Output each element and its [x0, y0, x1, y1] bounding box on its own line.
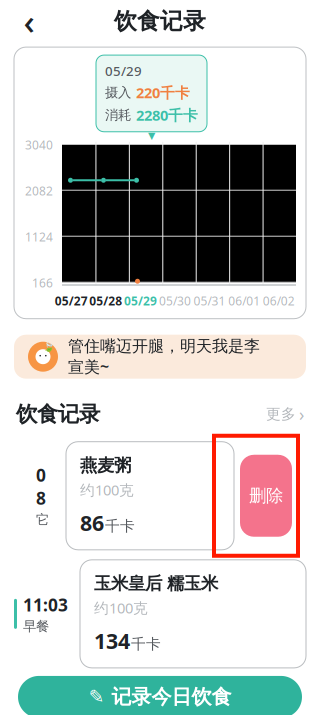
staticText: 删除 [249, 485, 283, 506]
staticText: 早餐 [23, 618, 49, 635]
staticText: 06/01 [228, 293, 260, 309]
staticText: 千卡 [105, 517, 135, 535]
staticText: 玉米皇后 糯玉米 [94, 573, 218, 594]
staticText: 3040 [25, 137, 53, 153]
staticText: 05/27 [55, 293, 88, 309]
button[interactable]: 更多 [256, 397, 304, 432]
staticText: 11:03 [23, 593, 68, 616]
staticText: 06/02 [263, 293, 295, 309]
staticText: 05/31 [194, 293, 226, 309]
staticText: 管住嘴迈开腿，明天我是李宣美~ [68, 336, 260, 377]
staticText: › [299, 403, 304, 426]
staticText: 约100克 [80, 480, 134, 499]
staticText: 饮食记录 [16, 401, 100, 427]
staticText: ‹ [23, 0, 34, 44]
staticText: 08 [36, 464, 46, 510]
staticText: 记录今日饮食 [111, 685, 231, 709]
staticText: 05/30 [159, 293, 191, 309]
staticText: 220千卡 [136, 83, 190, 102]
staticText: ✎ [88, 686, 104, 707]
staticText: 消耗 [105, 107, 131, 123]
staticText: 千卡 [131, 635, 161, 653]
staticText: 86 [80, 508, 104, 537]
staticText: 05/29 [105, 62, 142, 80]
staticText: 摄入 [105, 84, 131, 101]
staticText: 约100克 [94, 598, 148, 618]
staticText: 🍃 [43, 342, 55, 352]
staticText: 05/28 [89, 293, 122, 309]
staticText: 燕麦粥 [80, 455, 131, 476]
staticText: 05/29 [124, 293, 157, 309]
staticText: 134 [94, 627, 130, 655]
staticText: 2082 [25, 183, 53, 199]
staticText: 饮食记录 [114, 7, 206, 35]
staticText: 2280千卡 [136, 105, 198, 125]
button[interactable]: 返回 [8, 1, 50, 41]
staticText: ▾ [148, 127, 155, 143]
staticText: 166 [32, 275, 53, 291]
staticText: 更多 [266, 405, 296, 423]
staticText: 1124 [25, 229, 53, 245]
button[interactable]: 删除 [240, 455, 292, 537]
button[interactable]: ✎ [18, 676, 302, 715]
staticText: 它 [36, 512, 49, 528]
